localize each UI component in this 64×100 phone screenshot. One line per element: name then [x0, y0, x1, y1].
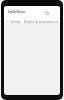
button[interactable]: InfoVivo — [4, 6, 60, 17]
button[interactable]: Search — [44, 10, 50, 16]
button[interactable]: 1. Versión · Playlist de la semana en di… — [4, 18, 60, 25]
staticText: InfoVivo — [8, 9, 26, 15]
staticText: 1. Versión · Playlist de la semana en di… — [7, 20, 60, 24]
